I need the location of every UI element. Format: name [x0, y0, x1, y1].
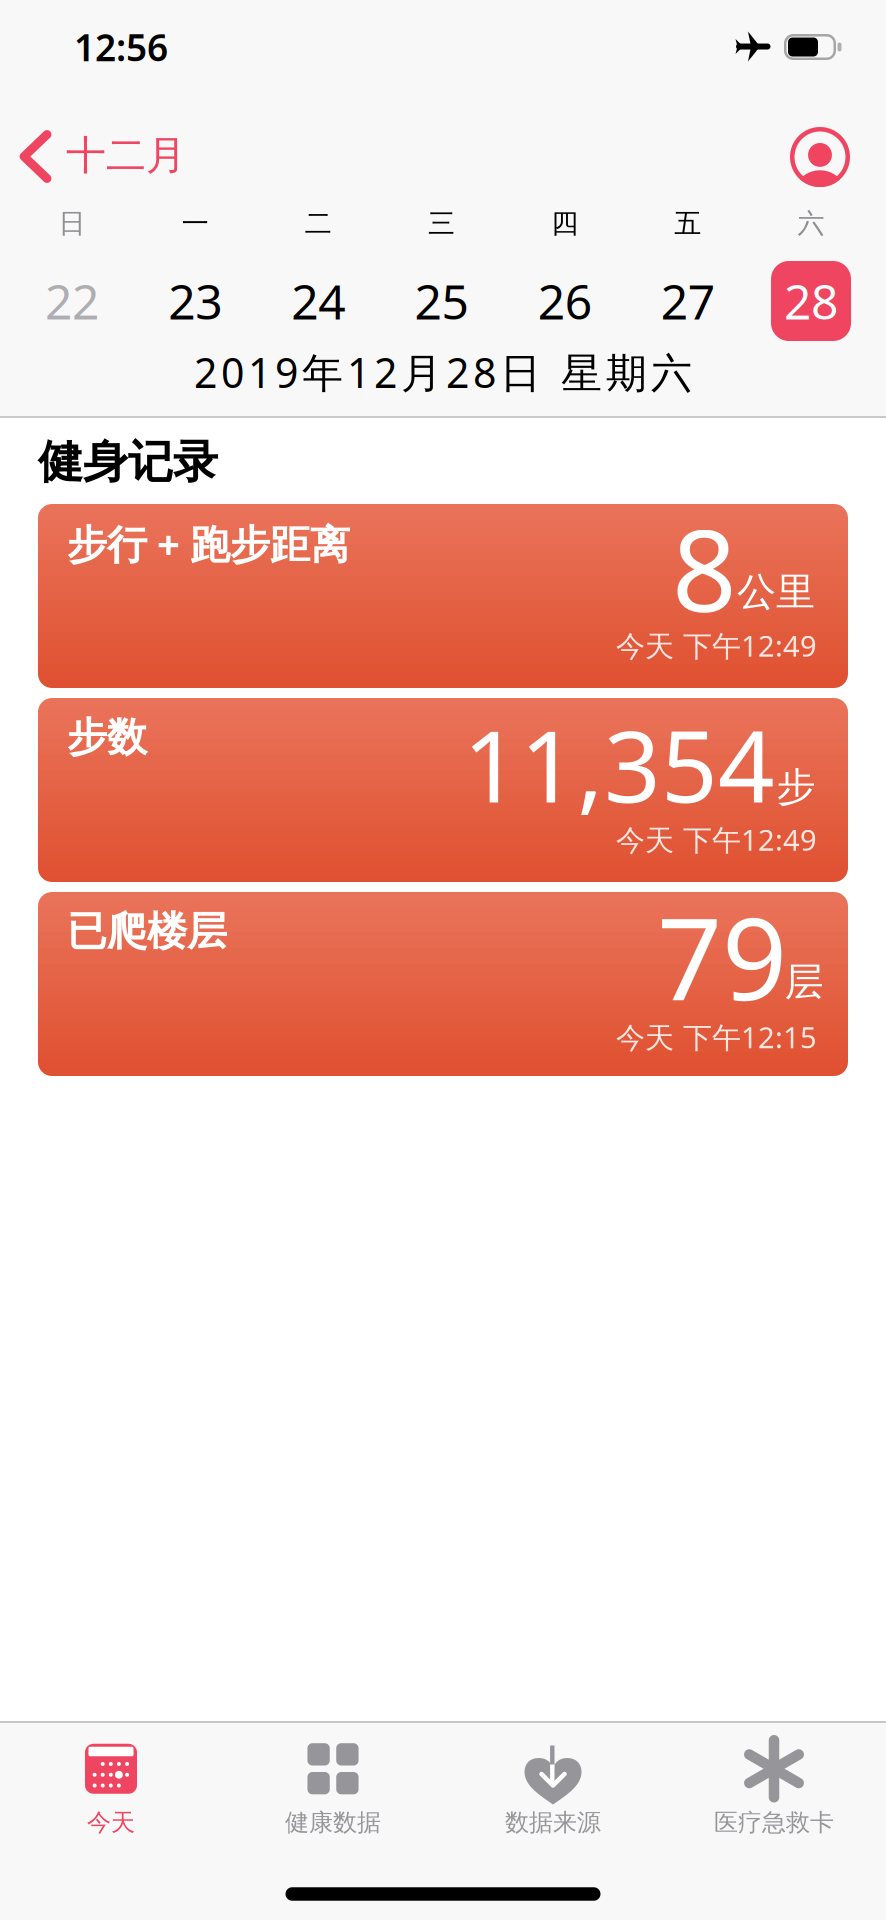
staticText: 今天 下午12:49 — [616, 626, 817, 665]
staticText: 79 — [657, 880, 787, 1032]
staticText: 健身记录 — [38, 434, 218, 490]
button[interactable]: 步数 — [38, 698, 848, 882]
staticText: 今天 下午12:49 — [616, 820, 817, 859]
button[interactable]: 健康数据 — [263, 1741, 403, 1837]
staticText: 今天 — [87, 1808, 135, 1837]
staticText: 已爬楼层 — [67, 907, 227, 956]
staticText: 日 — [58, 207, 85, 240]
button[interactable]: 步行 + 跑步距离 — [38, 504, 848, 688]
button[interactable]: 26 — [538, 269, 592, 333]
staticText: 十二月 — [66, 131, 186, 180]
button[interactable]: 24 — [291, 269, 345, 333]
staticText: 11,354 — [463, 698, 775, 830]
button[interactable]: 医疗急救卡 — [704, 1741, 844, 1837]
staticText: 三 — [428, 207, 455, 240]
button[interactable]: 28 — [771, 261, 851, 341]
staticText: 五 — [674, 207, 701, 240]
staticText: 8 — [672, 493, 737, 643]
staticText: 二 — [305, 207, 332, 240]
button[interactable]: 个人资料 — [790, 127, 850, 187]
staticText: 一 — [182, 207, 209, 240]
staticText: 六 — [797, 207, 824, 240]
staticText: 25 — [414, 269, 468, 333]
staticText: 今天 下午12:15 — [616, 1018, 817, 1056]
staticText: 2019年12月28日 星期六 — [194, 345, 692, 399]
staticText: 健康数据 — [285, 1808, 381, 1837]
staticText: 步行 + 跑步距离 — [67, 517, 350, 570]
staticText: 层 — [784, 958, 823, 1006]
staticText: 步 — [776, 763, 815, 811]
staticText: 28 — [784, 269, 838, 333]
staticText: 24 — [291, 269, 345, 333]
staticText: 12:56 — [74, 22, 168, 71]
button[interactable]: 25 — [414, 269, 468, 333]
button[interactable]: 返回十二月 — [23, 130, 193, 182]
button[interactable]: 今天 — [41, 1741, 181, 1837]
staticText: 公里 — [737, 568, 815, 616]
button[interactable]: 27 — [661, 269, 715, 333]
button[interactable]: 数据来源 — [483, 1741, 623, 1837]
staticText: 22 — [45, 269, 99, 333]
button[interactable]: 已爬楼层 — [38, 892, 848, 1076]
staticText: 23 — [168, 269, 222, 333]
button[interactable]: 23 — [168, 269, 222, 333]
staticText: 四 — [551, 207, 578, 240]
staticText: 27 — [661, 269, 715, 333]
staticText: 步数 — [67, 713, 147, 762]
staticText: 医疗急救卡 — [714, 1808, 834, 1837]
staticText: 数据来源 — [505, 1808, 601, 1837]
staticText: 26 — [538, 269, 592, 333]
